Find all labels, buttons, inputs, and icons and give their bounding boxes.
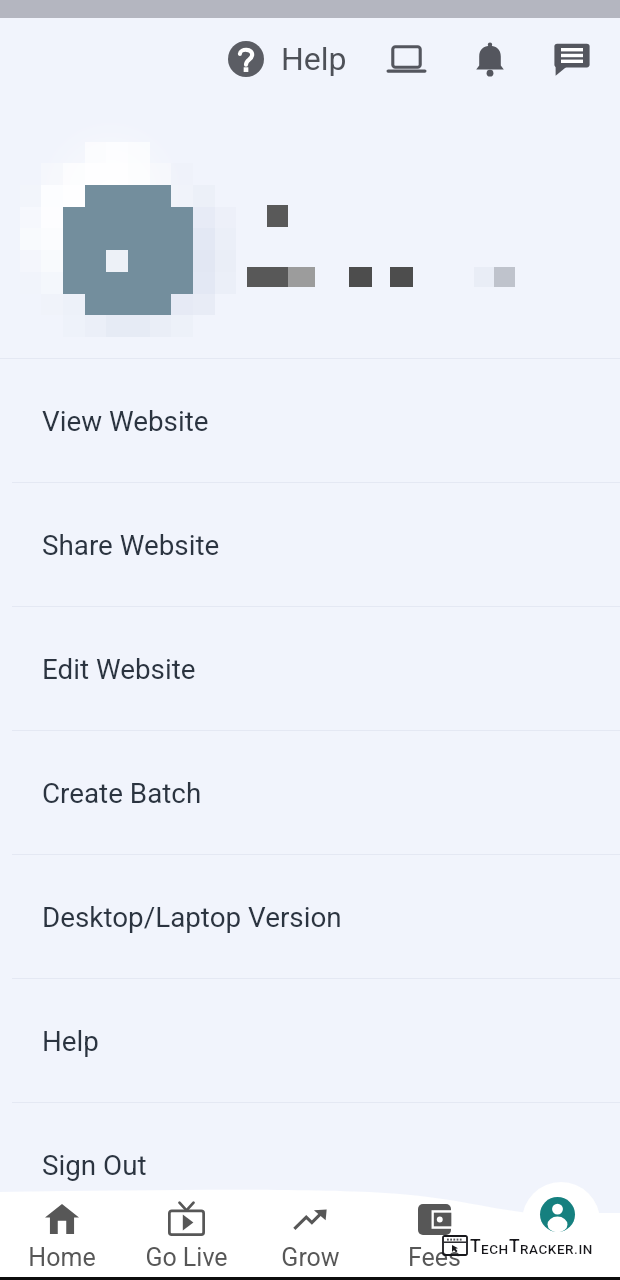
staticText: Desktop/Laptop Version (42, 901, 342, 934)
staticText: Sign Out (42, 1149, 147, 1182)
staticText: RACKER.IN (520, 1241, 593, 1257)
staticText: T (470, 1236, 481, 1257)
button[interactable]: Grow (248, 1192, 372, 1280)
staticText: Home (28, 1243, 96, 1272)
button[interactable]: Fees (372, 1192, 496, 1280)
button[interactable]: Share Website (0, 483, 620, 607)
button[interactable]: Help (0, 979, 620, 1103)
button[interactable]: View Website (0, 359, 620, 483)
button[interactable]: Profile (496, 1192, 620, 1280)
staticText: Help (42, 1025, 99, 1058)
button[interactable]: Create Batch (0, 731, 620, 855)
button[interactable]: Desktop/Laptop Version (0, 855, 620, 979)
button[interactable]: Desktop version (383, 35, 430, 82)
button[interactable]: Go Live (124, 1192, 248, 1280)
button[interactable]: Edit Website (0, 607, 620, 731)
staticText: Edit Website (42, 653, 196, 686)
staticText: ECH (481, 1241, 509, 1257)
button[interactable]: Notifications (466, 35, 513, 82)
staticText: Go Live (145, 1243, 228, 1272)
staticText: T (509, 1236, 520, 1257)
staticText: Help (281, 40, 347, 78)
staticText: Create Batch (42, 777, 202, 810)
button[interactable]: Sign Out (0, 1103, 620, 1227)
staticText: Fees (408, 1243, 461, 1272)
button[interactable]: Messages (548, 35, 595, 82)
staticText: View Website (42, 405, 209, 438)
button[interactable]: Help (228, 33, 347, 85)
button[interactable]: Home (0, 1192, 124, 1280)
staticText: Grow (281, 1243, 340, 1272)
staticText: Share Website (42, 529, 220, 562)
